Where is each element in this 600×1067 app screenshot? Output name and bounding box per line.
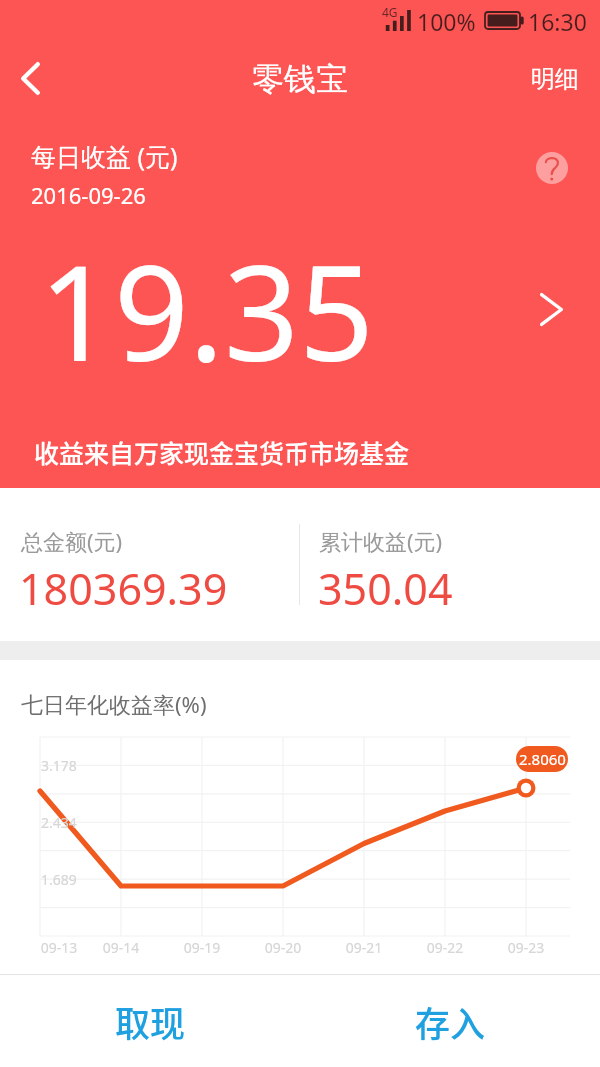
staticText: 2.434 [41,813,77,832]
staticText: 100% [417,6,476,37]
staticText: 09-21 [334,938,394,957]
button[interactable]: Help [536,152,568,184]
staticText: 09-22 [415,938,475,957]
staticText: 总金额(元) [21,526,123,556]
staticText: 16:30 [528,6,587,37]
staticText: 2.8060 [519,749,566,769]
button[interactable]: Back [2,50,58,106]
staticText: 180369.39 [19,559,228,618]
staticText: 09-23 [496,938,556,957]
staticText: 明细 [531,64,579,94]
staticText: 取现 [115,996,186,1047]
staticText: 七日年化收益率(%) [21,689,207,719]
staticText: 1.689 [41,870,77,889]
button[interactable]: Details [523,281,579,337]
staticText: 存入 [415,996,486,1047]
staticText: 3.178 [41,756,77,775]
staticText: 09-19 [172,938,232,957]
staticText: 2016-09-26 [31,180,146,210]
button[interactable]: 存入 [300,975,600,1067]
staticText: 零钱宝 [0,59,600,99]
button[interactable]: 取现 [0,975,300,1067]
staticText: 19.35 [39,221,374,399]
staticText: 09-14 [91,938,151,957]
staticText: 09-20 [253,938,313,957]
staticText: 累计收益(元) [319,526,443,556]
button[interactable]: 明细 [518,56,592,102]
staticText: 09-13 [29,938,89,957]
staticText: 4G [382,4,398,20]
staticText: 每日收益 (元) [31,139,178,173]
staticText: 收益来自万家现金宝货币市场基金 [34,434,410,470]
staticText: 350.04 [318,559,453,618]
